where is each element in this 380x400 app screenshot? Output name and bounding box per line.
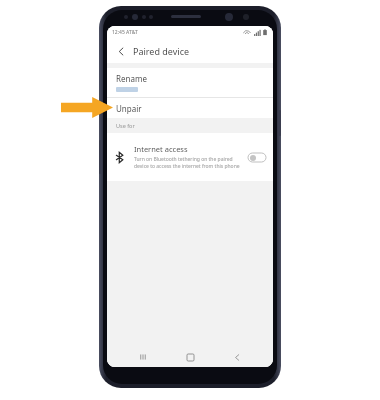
staticText: Use for [116, 122, 135, 129]
staticText: Turn on Bluetooth tethering on the paire… [134, 156, 242, 170]
button[interactable]: Home [179, 347, 201, 367]
staticText: Rename [116, 73, 147, 84]
button[interactable]: Back [114, 44, 128, 58]
button[interactable]: Back [226, 347, 248, 367]
staticText: Internet access [134, 144, 188, 154]
button[interactable]: Recents [132, 347, 154, 367]
staticText: 12:45 AT&T [112, 29, 138, 36]
staticText: Paired device [133, 45, 190, 57]
other: Pointer to Unpair [61, 97, 113, 118]
button[interactable]: Internet access [107, 133, 273, 181]
staticText: Unpair [116, 103, 142, 114]
button[interactable]: Unpair [107, 98, 273, 118]
button[interactable]: Internet access toggle [248, 153, 266, 162]
button[interactable]: Rename [107, 68, 273, 97]
